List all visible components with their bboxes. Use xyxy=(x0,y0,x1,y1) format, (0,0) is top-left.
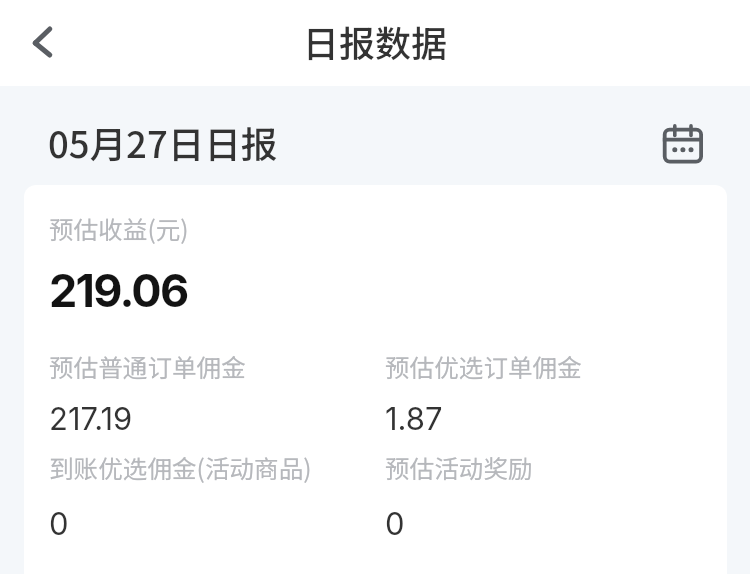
staticText: 0 xyxy=(49,505,69,543)
staticText: 到账优选佣金(活动商品) xyxy=(49,449,312,485)
staticText: 0 xyxy=(385,505,405,543)
staticText: 预估优选订单佣金 xyxy=(385,348,582,384)
staticText: 219.06 xyxy=(49,263,188,317)
staticText: 预估普通订单佣金 xyxy=(49,348,246,384)
button[interactable]: Pick date xyxy=(651,113,715,175)
button[interactable]: Back xyxy=(12,12,74,74)
staticText: 日报数据 xyxy=(303,15,448,67)
staticText: 05月27日日报 xyxy=(48,116,278,169)
staticText: 预估活动奖励 xyxy=(385,449,533,485)
staticText: 217.19 xyxy=(49,400,133,438)
staticText: 预估收益(元) xyxy=(49,210,189,246)
staticText: 1.87 xyxy=(385,400,443,438)
